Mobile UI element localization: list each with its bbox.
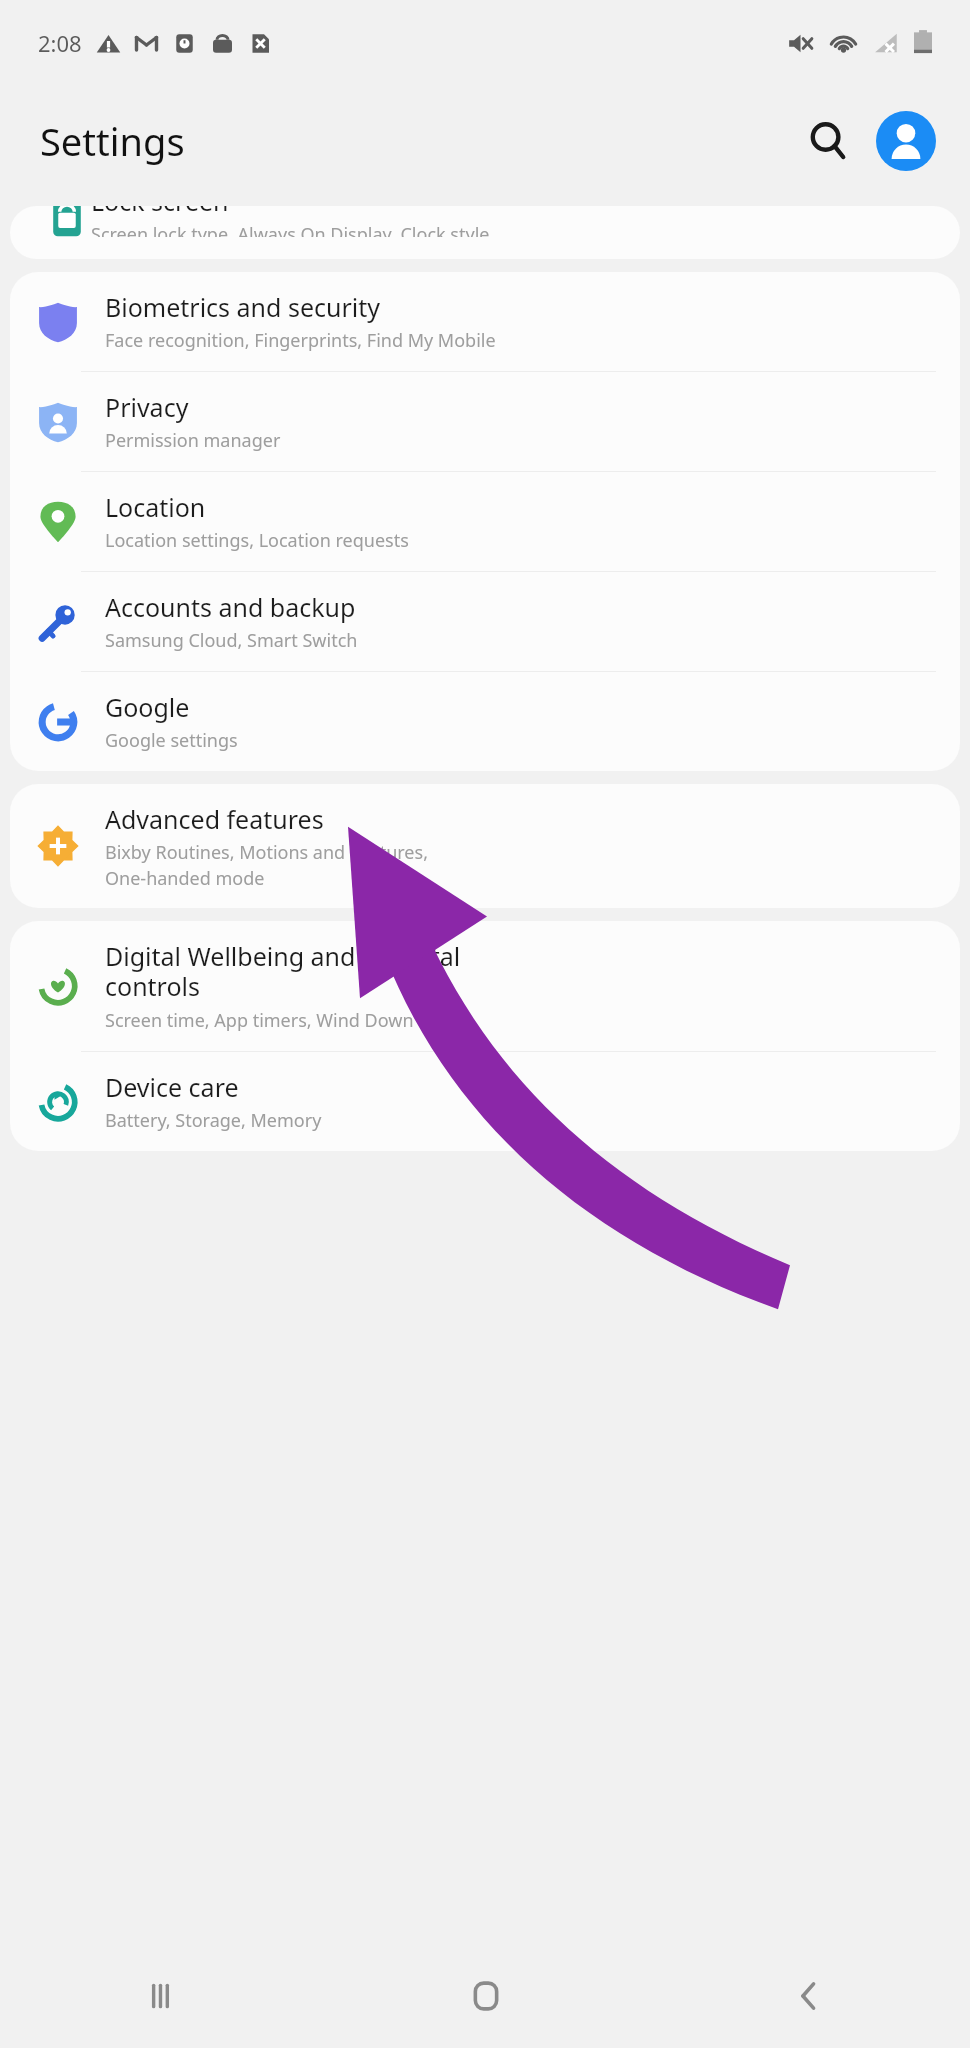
staticText: Advanced features (105, 802, 324, 836)
staticText: Google (105, 690, 190, 724)
button[interactable]: Recents (0, 1943, 324, 2048)
staticText: Samsung Cloud, Smart Switch (105, 628, 358, 653)
button[interactable]: Home (324, 1943, 647, 2048)
staticText: Digital Wellbeing and parental controls (105, 939, 461, 1004)
button[interactable]: Advanced features (10, 784, 960, 908)
staticText: Screen time, App timers, Wind Down (105, 1008, 414, 1033)
button[interactable]: Back (647, 1943, 970, 2048)
staticText: Lock screen (91, 206, 229, 218)
staticText: Face recognition, Fingerprints, Find My … (105, 328, 496, 353)
button[interactable]: Search (792, 105, 864, 177)
staticText: Device care (105, 1070, 239, 1104)
button[interactable]: Accounts and backup (10, 572, 960, 671)
button[interactable]: Biometrics and security (10, 272, 960, 371)
staticText: Location (105, 490, 206, 524)
staticText: Privacy (105, 390, 189, 424)
staticText: Settings (40, 115, 185, 167)
button[interactable]: Privacy (10, 372, 960, 471)
staticText: Google settings (105, 728, 238, 753)
button[interactable]: Location (10, 472, 960, 571)
button[interactable]: Lock screen (10, 206, 960, 259)
button[interactable]: Account (870, 105, 942, 177)
button[interactable]: Google (10, 672, 960, 771)
staticText: Bixby Routines, Motions and gestures, On… (105, 840, 428, 890)
staticText: Location settings, Location requests (105, 528, 409, 553)
button[interactable]: Device care (10, 1052, 960, 1151)
staticText: Biometrics and security (105, 290, 381, 324)
staticText: Accounts and backup (105, 590, 356, 624)
staticText: Permission manager (105, 428, 281, 453)
staticText: Screen lock type, Always On Display, Clo… (91, 222, 490, 237)
button[interactable]: Digital Wellbeing and parental controls (10, 921, 960, 1051)
staticText: Battery, Storage, Memory (105, 1108, 322, 1133)
staticText: 2:08 (38, 28, 82, 58)
